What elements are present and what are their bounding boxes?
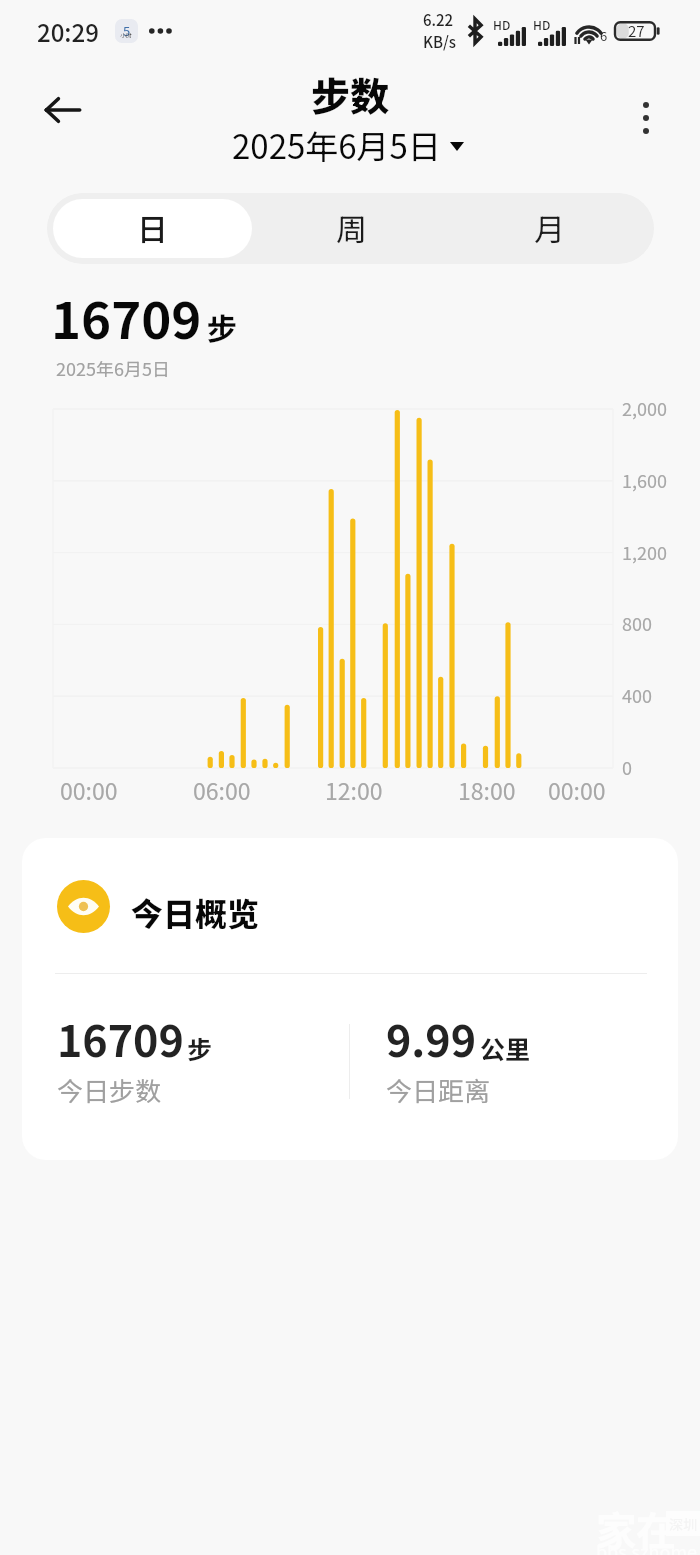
staticText: 5 — [123, 21, 131, 40]
staticText: 今日步数 — [57, 1071, 162, 1109]
staticText: 9.99 — [386, 1007, 477, 1069]
staticText: 27 — [628, 20, 645, 42]
staticText: 步数 — [311, 66, 390, 122]
staticText: KB/s — [423, 31, 457, 53]
staticText: HD — [493, 16, 511, 33]
staticText: 公里 — [480, 1030, 531, 1066]
staticText: 6 — [600, 26, 608, 45]
staticText: 深圳 — [669, 1514, 697, 1534]
staticText: 06:00 — [193, 773, 251, 806]
staticText: 16709 — [57, 1007, 184, 1069]
staticText: 步 — [207, 305, 237, 348]
staticText: 今日概览 — [131, 889, 260, 935]
staticText: 步 — [187, 1030, 213, 1066]
staticText: 12:00 — [325, 773, 383, 806]
staticText: 周 — [336, 205, 367, 250]
staticText: 1,200 — [622, 539, 667, 565]
staticText: 0 — [622, 754, 632, 780]
staticText: 00:00 — [60, 773, 118, 806]
staticText: 月 — [534, 205, 565, 250]
staticText: 20:29 — [37, 14, 99, 49]
button[interactable]: More options — [618, 90, 674, 146]
staticText: 800 — [622, 610, 652, 636]
staticText: HD — [533, 16, 551, 33]
staticText: 2025年6月5日 — [56, 355, 170, 381]
staticText: 今日距离 — [386, 1071, 491, 1109]
staticText: 18:00 — [458, 773, 516, 806]
staticText: 2025年6月5日 — [232, 121, 441, 169]
button[interactable]: 日 — [53, 199, 252, 258]
staticText: 16709 — [51, 280, 202, 354]
staticText: 00:00 — [548, 773, 606, 806]
button[interactable]: 今日概览 — [22, 838, 678, 1160]
staticText: 6.22 — [423, 9, 454, 31]
button[interactable]: Back — [30, 77, 96, 143]
staticText: 日 — [137, 205, 168, 250]
staticText: 小时 — [120, 31, 133, 40]
staticText: 400 — [622, 682, 652, 708]
button[interactable]: 月 — [450, 199, 648, 258]
staticText: 2,000 — [622, 395, 667, 421]
staticText: 1,600 — [622, 467, 667, 493]
button[interactable]: 2025年6月5日 — [227, 118, 469, 172]
button[interactable]: 周 — [252, 199, 450, 258]
